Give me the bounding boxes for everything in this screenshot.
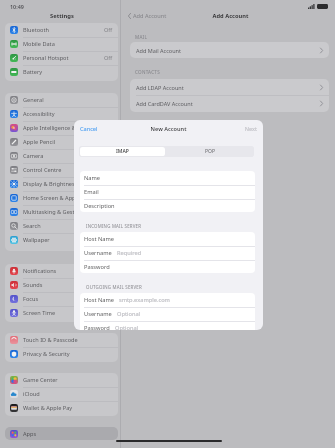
staticText: POP (205, 148, 215, 155)
staticText: Description (84, 202, 115, 210)
button[interactable]: Apps (5, 427, 118, 440)
button[interactable]: Description (80, 199, 255, 212)
staticText: New Account (74, 125, 263, 133)
staticText: Bluetooth (23, 26, 49, 34)
button[interactable]: Screen Time (5, 306, 118, 320)
staticText: Accessibility (23, 110, 55, 118)
staticText: iCloud (23, 390, 40, 398)
button[interactable]: Username (80, 307, 255, 321)
button[interactable]: Camera (5, 149, 118, 163)
staticText: Required (117, 249, 142, 257)
button[interactable]: Apple Intelligence & Siri (5, 121, 118, 135)
staticText: smtp.example.com (119, 296, 170, 304)
staticText: Settings (3, 12, 121, 20)
staticText: Add LDAP Account (136, 84, 184, 91)
button[interactable]: Apple Pencil (5, 135, 118, 149)
staticText: Optional (115, 324, 139, 330)
button[interactable]: Wallpaper (5, 233, 118, 247)
staticText: Wallpaper (23, 236, 50, 244)
button[interactable]: Home Screen & App Library (5, 191, 118, 205)
staticText: 10:49 (10, 3, 24, 10)
button[interactable]: Email (80, 185, 255, 199)
staticText: Name (84, 174, 101, 182)
button[interactable]: Control Centre (5, 163, 118, 177)
staticText: Next (74, 125, 257, 133)
button[interactable]: Sounds (5, 278, 118, 292)
button[interactable]: POP (166, 146, 254, 157)
button[interactable]: Personal Hotspot (5, 51, 118, 65)
button[interactable]: Focus (5, 292, 118, 306)
button[interactable]: Cancel (80, 125, 98, 133)
staticText: Host Name (84, 296, 114, 304)
staticText: Username (84, 249, 112, 257)
staticText: Apple Intelligence & Siri (23, 124, 86, 132)
button[interactable]: Add CardDAV Account (130, 95, 329, 111)
staticText: Off (104, 54, 113, 62)
button[interactable]: Add Mail Account (130, 42, 329, 58)
button[interactable]: Bluetooth (5, 23, 118, 37)
staticText: Focus (23, 295, 39, 303)
staticText: Add CardDAV Account (136, 100, 193, 107)
staticText: Home Screen & App Library (23, 194, 96, 202)
staticText: Personal Hotspot (23, 54, 69, 62)
staticText: Optional (117, 310, 141, 318)
button[interactable]: Battery (5, 65, 118, 79)
staticText: Password (84, 263, 110, 271)
staticText: Sounds (23, 281, 43, 289)
button[interactable]: General (5, 93, 118, 107)
staticText: Touch ID & Passcode (23, 336, 78, 344)
staticText: Camera (23, 152, 44, 160)
staticText: Add Account (133, 12, 167, 20)
button[interactable]: Password (80, 321, 255, 330)
staticText: Username (84, 310, 112, 318)
staticText: Control Centre (23, 166, 62, 174)
button[interactable]: Wallet & Apple Pay (5, 401, 118, 415)
staticText: General (23, 96, 44, 104)
staticText: Mobile Data (23, 40, 55, 48)
button[interactable]: Privacy & Security (5, 347, 118, 361)
staticText: Password (84, 324, 110, 330)
button[interactable]: Name (80, 171, 255, 185)
button[interactable]: Multitasking & Gestures (5, 205, 118, 219)
staticText: OUTGOING MAIL SERVER (86, 284, 142, 290)
staticText: Search (23, 222, 41, 230)
staticText: Off (104, 26, 113, 34)
button[interactable]: Back (128, 12, 167, 20)
button[interactable]: Password (80, 260, 255, 273)
staticText: Display & Brightness (23, 180, 78, 188)
button[interactable]: Username (80, 246, 255, 260)
staticText: Email (84, 188, 99, 196)
button[interactable]: Host Name (80, 232, 255, 246)
staticText: Host Name (84, 235, 114, 243)
staticText: Apps (23, 430, 37, 438)
button[interactable]: Search (5, 219, 118, 233)
staticText: INCOMING MAIL SERVER (86, 223, 142, 229)
button[interactable]: Touch ID & Passcode (5, 333, 118, 347)
staticText: Screen Time (23, 309, 56, 317)
staticText: Game Center (23, 376, 58, 384)
staticText: IMAP (116, 148, 129, 155)
staticText: Apple Pencil (23, 138, 56, 146)
button[interactable]: Accessibility (5, 107, 118, 121)
staticText: Multitasking & Gestures (23, 208, 87, 216)
staticText: Privacy & Security (23, 350, 70, 358)
button[interactable]: Mobile Data (5, 37, 118, 51)
button[interactable]: Notifications (5, 264, 118, 278)
button[interactable]: iCloud (5, 387, 118, 401)
staticText: Add Mail Account (136, 47, 181, 54)
button[interactable]: Host Name (80, 293, 255, 307)
button[interactable]: Add LDAP Account (130, 79, 329, 95)
staticText: Add Account (123, 12, 335, 20)
button[interactable]: Display & Brightness (5, 177, 118, 191)
staticText: CONTACTS (135, 69, 160, 75)
staticText: MAIL (135, 34, 148, 40)
staticText: Notifications (23, 267, 57, 275)
staticText: Wallet & Apple Pay (23, 404, 73, 412)
staticText: Battery (23, 68, 43, 76)
button[interactable]: Game Center (5, 373, 118, 387)
button[interactable]: IMAP (80, 147, 165, 156)
